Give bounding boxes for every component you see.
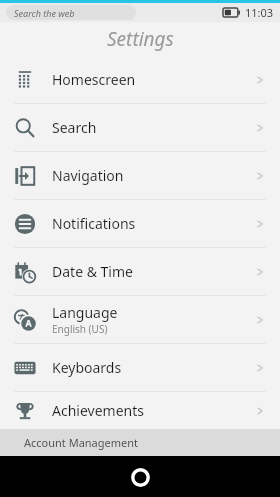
button[interactable]: Language xyxy=(0,296,280,343)
staticText: Keyboards xyxy=(52,358,122,377)
button[interactable]: Achievements xyxy=(0,392,280,429)
staticText: Search the web xyxy=(14,7,75,19)
button[interactable]: Home xyxy=(122,459,158,495)
staticText: Date & Time xyxy=(52,262,133,281)
staticText: Settings xyxy=(107,26,174,52)
staticText: English (US) xyxy=(52,322,108,336)
staticText: 11:03 xyxy=(245,5,274,20)
button[interactable]: Navigation xyxy=(0,152,280,199)
staticText: Homescreen xyxy=(52,70,136,89)
staticText: Achievements xyxy=(52,401,144,420)
button[interactable]: Account Management xyxy=(0,429,280,456)
staticText: Navigation xyxy=(52,166,124,185)
button[interactable]: Keyboards xyxy=(0,344,280,391)
staticText: Language xyxy=(52,303,118,322)
button[interactable]: Notifications xyxy=(0,200,280,247)
button[interactable]: Search the web xyxy=(6,5,136,20)
staticText: Search xyxy=(52,118,97,137)
staticText: Account Management xyxy=(24,435,139,450)
button[interactable]: Homescreen xyxy=(0,56,280,103)
button[interactable]: Date & Time xyxy=(0,248,280,295)
button[interactable]: Search xyxy=(0,104,280,151)
staticText: Notifications xyxy=(52,214,136,233)
